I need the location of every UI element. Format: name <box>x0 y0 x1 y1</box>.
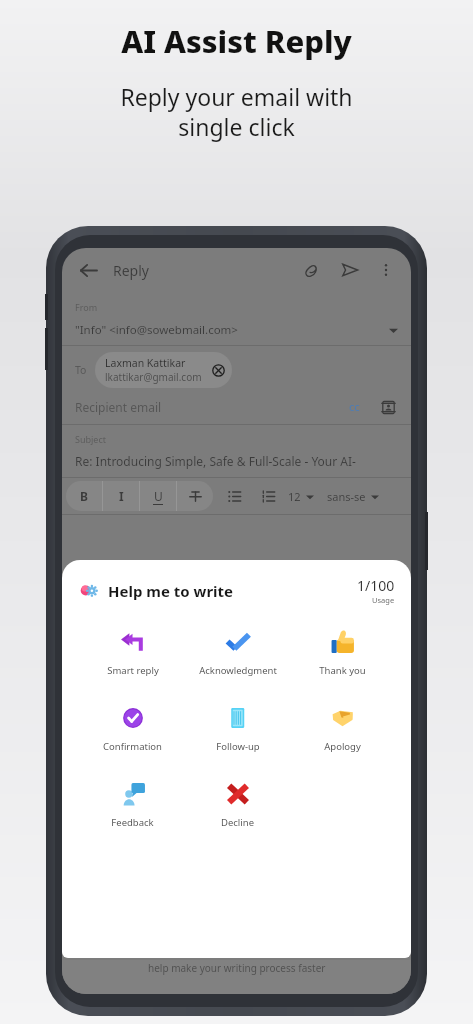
staticText: Apology <box>324 740 361 753</box>
staticText: Reply your email with single click <box>120 81 353 143</box>
staticText: B <box>80 488 88 504</box>
staticText: Usage <box>372 595 395 605</box>
button[interactable]: 12 <box>285 489 317 504</box>
button[interactable]: I <box>103 481 139 511</box>
staticText: Follow-up <box>216 740 260 753</box>
staticText: 12 <box>288 489 301 504</box>
staticText: help make your writing process faster <box>148 961 326 975</box>
staticText: Reply <box>113 261 149 280</box>
staticText: AI Assist Reply <box>121 20 352 62</box>
button[interactable]: Confirmation <box>99 703 166 755</box>
staticText: cc <box>349 399 360 414</box>
button[interactable]: Feedback <box>107 779 158 831</box>
button[interactable]: sans-se <box>325 489 381 504</box>
staticText: Confirmation <box>103 740 162 753</box>
button[interactable]: U <box>140 481 176 511</box>
button[interactable]: Laxman Kattikar <box>95 352 232 388</box>
button[interactable]: Thank you <box>315 627 370 679</box>
button[interactable]: Apology <box>320 703 365 755</box>
button[interactable]: Attach <box>298 257 324 283</box>
staticText: Thank you <box>319 664 366 677</box>
staticText: I <box>119 488 124 504</box>
button[interactable]: cc <box>345 395 364 418</box>
staticText: From <box>75 301 98 313</box>
button[interactable]: Decline <box>217 779 258 831</box>
staticText: Subject <box>75 433 107 445</box>
button[interactable]: B <box>66 481 102 511</box>
button[interactable]: Smart reply <box>103 627 163 679</box>
button[interactable]: Numbered list <box>255 483 281 509</box>
button[interactable]: Acknowledgment <box>195 627 281 679</box>
button[interactable]: Back <box>75 257 101 283</box>
staticText: To <box>75 363 87 377</box>
staticText: Smart reply <box>107 664 159 677</box>
staticText: Laxman Kattikar <box>105 356 186 370</box>
staticText: Acknowledgment <box>199 664 277 677</box>
staticText: Re: Introducing Simple, Safe & Full-Scal… <box>75 453 398 469</box>
staticText: Recipient email <box>75 399 162 415</box>
staticText: Decline <box>221 816 254 829</box>
staticText: lkattikar@gmail.com <box>105 370 202 384</box>
staticText: Feedback <box>111 816 154 829</box>
staticText: "Info" <info@sowebmail.com> <box>75 322 238 338</box>
button[interactable]: Bulleted list <box>221 483 247 509</box>
staticText: 1/100 <box>357 576 395 595</box>
button[interactable]: Follow-up <box>212 703 264 755</box>
button[interactable]: Contacts <box>378 397 398 417</box>
staticText: Help me to write <box>108 581 234 601</box>
staticText: U <box>154 488 163 504</box>
button[interactable]: Strikethrough <box>177 481 213 511</box>
button[interactable]: Send <box>337 257 363 283</box>
staticText: sans-se <box>327 489 366 504</box>
button[interactable]: More options <box>374 258 398 282</box>
